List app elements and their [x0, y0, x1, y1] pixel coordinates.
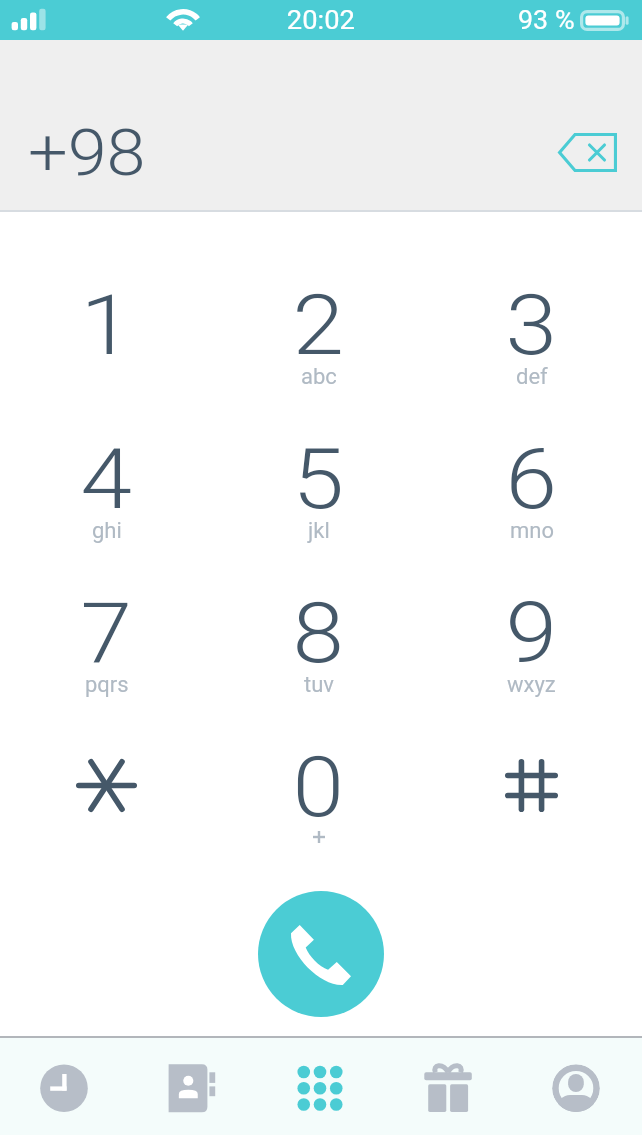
- staticText: mno: [510, 518, 554, 544]
- staticText: def: [516, 364, 548, 390]
- staticText: 0: [292, 739, 345, 837]
- staticText: 9: [505, 585, 558, 683]
- button[interactable]: Dialpad: [276, 1038, 364, 1135]
- staticText: 1: [80, 277, 133, 375]
- staticText: 3: [505, 277, 558, 375]
- button[interactable]: 2: [212, 263, 425, 417]
- button[interactable]: 5: [212, 417, 425, 571]
- staticText: 5: [292, 431, 345, 529]
- staticText: tuv: [304, 672, 334, 698]
- button[interactable]: Profile: [532, 1038, 620, 1135]
- button[interactable]: Gifts: [404, 1038, 492, 1135]
- button[interactable]: [0, 725, 212, 879]
- staticText: 20:02: [287, 6, 355, 36]
- button[interactable]: 1: [0, 263, 212, 417]
- staticText: 93 %: [518, 6, 575, 36]
- staticText: abc: [301, 364, 337, 390]
- button[interactable]: 6: [425, 417, 638, 571]
- staticText: 6: [505, 431, 558, 529]
- staticText: 4: [80, 431, 133, 529]
- staticText: ghi: [92, 518, 122, 544]
- button[interactable]: Contacts: [144, 1038, 232, 1135]
- button[interactable]: Recent calls: [20, 1038, 108, 1135]
- staticText: wxyz: [507, 672, 556, 698]
- button[interactable]: Backspace: [552, 122, 622, 182]
- button[interactable]: 0: [212, 725, 425, 879]
- staticText: jkl: [308, 518, 330, 544]
- button[interactable]: 8: [212, 571, 425, 725]
- staticText: 2: [292, 277, 345, 375]
- button[interactable]: Call: [258, 891, 384, 1017]
- button[interactable]: [425, 725, 638, 879]
- button[interactable]: 9: [425, 571, 638, 725]
- button[interactable]: 3: [425, 263, 638, 417]
- staticText: pqrs: [85, 672, 129, 698]
- staticText: +98: [28, 116, 146, 191]
- button[interactable]: 4: [0, 417, 212, 571]
- staticText: 8: [292, 585, 345, 683]
- staticText: 7: [80, 585, 133, 683]
- button[interactable]: 7: [0, 571, 212, 725]
